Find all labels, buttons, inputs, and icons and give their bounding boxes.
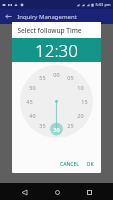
button[interactable]: OK <box>84 159 96 170</box>
staticText: 05 <box>67 74 74 81</box>
staticText: CANCEL <box>60 161 79 168</box>
staticText: 25 <box>67 122 74 129</box>
staticText: 20 <box>77 112 84 119</box>
staticText: 45 <box>26 98 33 105</box>
button[interactable]: Back <box>3 11 14 22</box>
staticText: Select followup Time <box>17 26 82 35</box>
staticText: 15 <box>81 98 88 105</box>
staticText: 00 <box>53 71 60 78</box>
staticText: Inquiry Management <box>17 13 77 21</box>
button[interactable]: Recent apps <box>81 184 97 200</box>
staticText: 5:03 pm <box>95 2 111 7</box>
staticText: OK <box>86 161 94 168</box>
button[interactable]: Back <box>16 184 32 200</box>
button[interactable]: Home <box>49 184 65 200</box>
button[interactable]: Minute picker <box>20 65 93 138</box>
staticText: 30 <box>53 126 60 133</box>
staticText: 50 <box>29 84 36 91</box>
staticText: 35 <box>39 122 46 129</box>
button[interactable]: CANCEL <box>58 159 81 170</box>
staticText: 12:30 <box>35 39 78 62</box>
staticText: 55 <box>39 74 46 81</box>
staticText: 40 <box>29 112 36 119</box>
staticText: 10 <box>77 84 84 91</box>
